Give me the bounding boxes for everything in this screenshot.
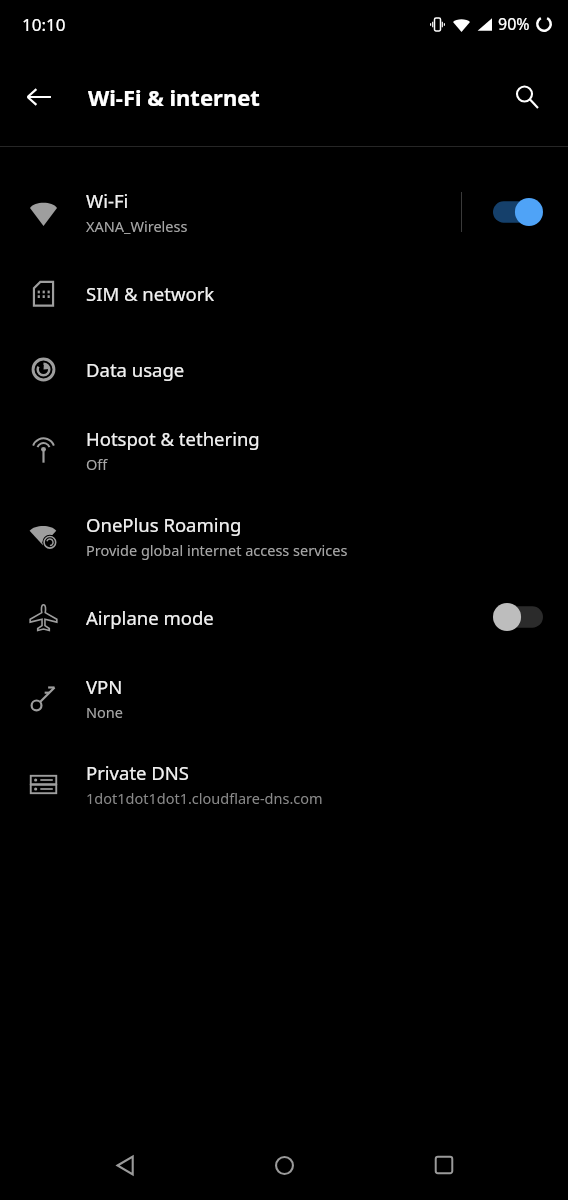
staticText: SIM & network (86, 281, 215, 306)
button[interactable]: Home (249, 1130, 319, 1200)
button[interactable]: Airplane mode (0, 579, 568, 655)
staticText: OnePlus Roaming (86, 512, 242, 537)
button[interactable]: Hotspot & tethering (0, 407, 568, 493)
button[interactable]: Recents (409, 1130, 479, 1200)
staticText: 10:10 (22, 13, 66, 36)
staticText: 90% (498, 13, 530, 35)
button[interactable]: Wi-Fi on (490, 190, 546, 234)
button[interactable]: Back (90, 1130, 160, 1200)
button[interactable]: SIM & network (0, 255, 568, 331)
staticText: Provide global internet access services (86, 540, 348, 560)
button[interactable]: Private DNS (0, 741, 568, 827)
button[interactable]: Wi-Fi (0, 169, 568, 255)
staticText: Hotspot & tethering (86, 426, 260, 451)
staticText: VPN (86, 674, 123, 699)
staticText: Airplane mode (86, 605, 214, 630)
button[interactable]: VPN (0, 655, 568, 741)
button[interactable]: Airplane mode off (490, 595, 546, 639)
button[interactable]: Search (498, 68, 556, 126)
staticText: Data usage (86, 357, 185, 382)
staticText: Wi-Fi (86, 188, 129, 213)
button[interactable]: Back (10, 68, 68, 126)
staticText: Wi-Fi & internet (88, 82, 260, 112)
button[interactable]: Data usage (0, 331, 568, 407)
staticText: None (86, 702, 123, 722)
staticText: 1dot1dot1dot1.cloudflare-dns.com (86, 788, 323, 808)
staticText: Private DNS (86, 760, 190, 785)
staticText: XANA_Wireless (86, 216, 188, 236)
staticText: Off (86, 454, 108, 474)
button[interactable]: OnePlus Roaming (0, 493, 568, 579)
